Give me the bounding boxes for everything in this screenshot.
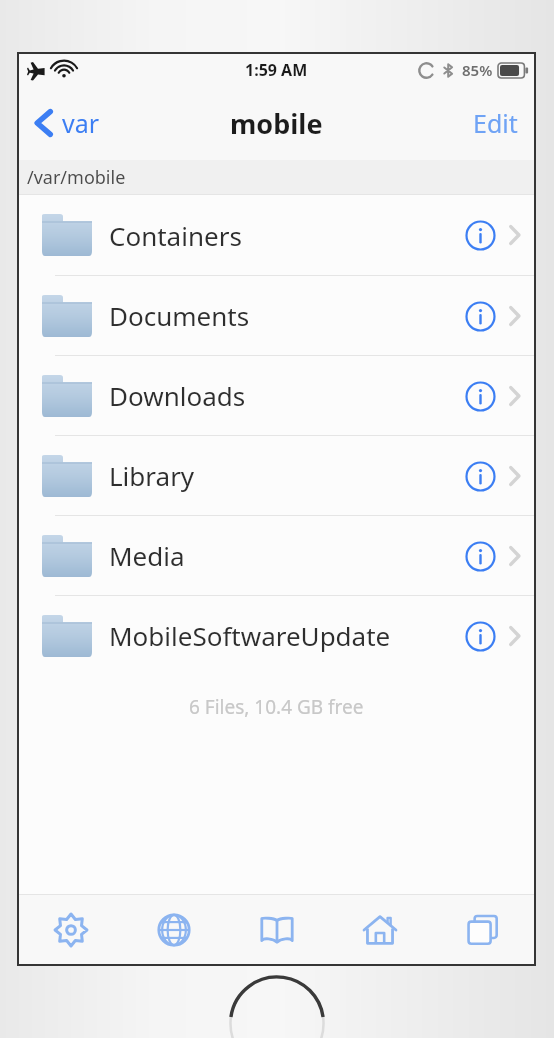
button[interactable]: Downloads xyxy=(19,356,534,435)
button[interactable]: Containers xyxy=(19,195,534,275)
button[interactable]: var xyxy=(19,96,114,150)
staticText: Library xyxy=(109,458,458,493)
staticText: 85% xyxy=(462,60,493,80)
staticText: 1:59 AM xyxy=(245,59,308,81)
staticText: Downloads xyxy=(109,378,458,413)
button[interactable]: Info about Downloads xyxy=(458,374,502,418)
button[interactable]: MobileSoftwareUpdate xyxy=(19,596,534,675)
staticText: var xyxy=(62,106,100,140)
button[interactable]: Info about Containers xyxy=(458,213,502,257)
button[interactable]: Documents xyxy=(19,276,534,355)
button[interactable]: Library xyxy=(19,436,534,515)
button[interactable]: Tabs xyxy=(431,895,534,964)
staticText: /var/mobile xyxy=(27,165,126,190)
button[interactable]: Info about MobileSoftwareUpdate xyxy=(458,614,502,658)
button[interactable]: Home xyxy=(328,895,431,964)
button[interactable]: Browser xyxy=(122,895,225,964)
staticText: MobileSoftwareUpdate xyxy=(109,618,458,653)
staticText: 6 Files, 10.4 GB free xyxy=(189,694,364,720)
button[interactable]: Media xyxy=(19,516,534,595)
staticText: Media xyxy=(109,538,458,573)
staticText: Edit xyxy=(473,106,518,140)
button[interactable]: Settings xyxy=(19,895,122,964)
button[interactable]: Info about Library xyxy=(458,454,502,498)
staticText: Containers xyxy=(109,218,458,253)
staticText: mobile xyxy=(230,105,323,142)
button[interactable]: Edit xyxy=(457,96,534,150)
button[interactable]: Bookmarks xyxy=(225,895,328,964)
button[interactable]: Info about Documents xyxy=(458,294,502,338)
button[interactable]: Info about Media xyxy=(458,534,502,578)
staticText: Documents xyxy=(109,298,458,333)
